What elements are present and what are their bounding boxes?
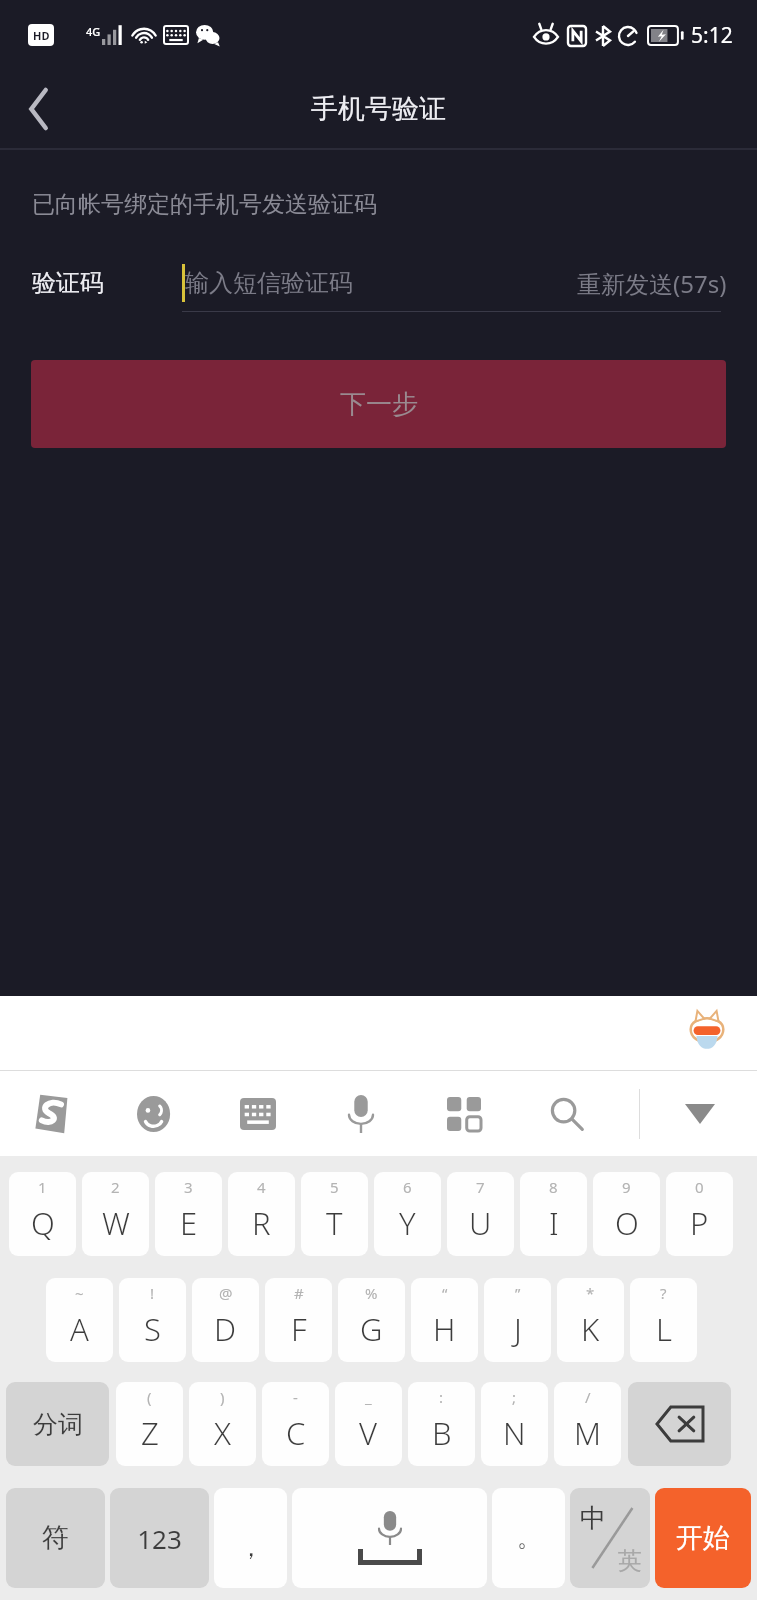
staticText: !	[150, 1283, 155, 1303]
staticText: @	[219, 1283, 233, 1303]
staticText: D	[214, 1308, 237, 1350]
staticText: 7	[476, 1177, 485, 1197]
button[interactable]: -	[262, 1382, 329, 1466]
button[interactable]: More	[433, 1083, 495, 1145]
button[interactable]: 7	[447, 1172, 514, 1256]
button[interactable]: 1	[9, 1172, 76, 1256]
staticText: 0	[695, 1177, 704, 1197]
button[interactable]: 3	[155, 1172, 222, 1256]
button[interactable]: #	[265, 1278, 332, 1362]
button[interactable]: Emoji	[124, 1083, 186, 1145]
staticText: /	[585, 1387, 591, 1407]
button[interactable]: 4	[228, 1172, 295, 1256]
staticText: P	[690, 1202, 709, 1244]
button[interactable]: 123	[110, 1488, 209, 1588]
staticText: 3	[184, 1177, 193, 1197]
button[interactable]: ~	[46, 1278, 113, 1362]
staticText: 123	[137, 1521, 182, 1556]
button[interactable]: ;	[481, 1382, 548, 1466]
staticText: _	[365, 1387, 372, 1407]
staticText: R	[252, 1202, 271, 1244]
button[interactable]: ”	[484, 1278, 551, 1362]
button[interactable]: (	[116, 1382, 183, 1466]
staticText: 2	[111, 1177, 120, 1197]
staticText: F	[291, 1308, 307, 1350]
staticText: 已向帐号绑定的手机号发送验证码	[32, 190, 377, 219]
staticText: )	[220, 1387, 225, 1407]
button[interactable]: Chinese / English	[570, 1488, 650, 1588]
staticText: I	[549, 1202, 559, 1244]
button[interactable]: 9	[593, 1172, 660, 1256]
staticText: 分词	[33, 1409, 83, 1440]
button[interactable]: 5	[301, 1172, 368, 1256]
button[interactable]: Voice input	[330, 1083, 392, 1145]
staticText: W	[102, 1202, 130, 1244]
button[interactable]: ?	[630, 1278, 697, 1362]
staticText: Y	[399, 1202, 416, 1244]
button[interactable]: Start	[655, 1488, 751, 1588]
button[interactable]: 重新发送(57s)	[577, 267, 757, 300]
button[interactable]: 8	[520, 1172, 587, 1256]
staticText: “	[442, 1283, 448, 1303]
staticText: (	[147, 1387, 152, 1407]
staticText: 6	[403, 1177, 412, 1197]
staticText: 手机号验证	[311, 92, 446, 126]
button[interactable]: 分词	[6, 1382, 109, 1466]
staticText: J	[514, 1308, 522, 1350]
button[interactable]: _	[335, 1382, 402, 1466]
button[interactable]: %	[338, 1278, 405, 1362]
staticText: 8	[549, 1177, 558, 1197]
staticText: ~	[75, 1283, 84, 1303]
button[interactable]: *	[557, 1278, 624, 1362]
staticText: %	[365, 1283, 378, 1303]
button[interactable]: 0	[666, 1172, 733, 1256]
staticText: 英	[618, 1546, 642, 1576]
button[interactable]: Back	[0, 70, 78, 148]
staticText: 验证码	[32, 268, 150, 298]
staticText: 4	[257, 1177, 266, 1197]
staticText: ;	[512, 1387, 517, 1407]
staticText: G	[360, 1308, 383, 1350]
button[interactable]: 下一步	[31, 360, 726, 448]
staticText: V	[359, 1412, 378, 1454]
button[interactable]: “	[411, 1278, 478, 1362]
staticText: 输入短信验证码	[185, 268, 353, 298]
button[interactable]: Backspace	[628, 1382, 731, 1466]
button[interactable]: Space	[292, 1488, 487, 1588]
staticText: *	[586, 1283, 595, 1303]
staticText: #	[294, 1283, 304, 1303]
button[interactable]: Sogou	[22, 1083, 84, 1145]
staticText: 9	[622, 1177, 631, 1197]
staticText: N	[503, 1412, 526, 1454]
button[interactable]: 2	[82, 1172, 149, 1256]
staticText: :	[439, 1387, 444, 1407]
staticText: 中	[580, 1502, 606, 1535]
button[interactable]: Hide keyboard	[669, 1083, 731, 1145]
button[interactable]: Keyboard	[227, 1083, 289, 1145]
staticText: ，	[239, 1533, 263, 1563]
staticText: O	[615, 1202, 639, 1244]
button[interactable]: !	[119, 1278, 186, 1362]
staticText: ”	[515, 1283, 521, 1303]
staticText: 。	[517, 1523, 541, 1553]
staticText: Q	[31, 1202, 55, 1244]
button[interactable]: 符	[6, 1488, 105, 1588]
button[interactable]: Comma	[214, 1488, 287, 1588]
staticText: S	[144, 1308, 161, 1350]
button[interactable]: /	[554, 1382, 621, 1466]
button[interactable]: Assistant	[681, 1007, 733, 1059]
button[interactable]: )	[189, 1382, 256, 1466]
button[interactable]: 6	[374, 1172, 441, 1256]
staticText: 1	[38, 1177, 47, 1197]
staticText: K	[581, 1308, 600, 1350]
staticText: 开始	[676, 1521, 730, 1555]
staticText: A	[70, 1308, 89, 1350]
staticText: 4G	[86, 24, 101, 39]
staticText: B	[432, 1412, 452, 1454]
button[interactable]: Search	[536, 1083, 598, 1145]
button[interactable]: :	[408, 1382, 475, 1466]
button[interactable]: Period	[492, 1488, 565, 1588]
button[interactable]: @	[192, 1278, 259, 1362]
staticText: Z	[141, 1412, 159, 1454]
staticText: ?	[660, 1283, 667, 1303]
